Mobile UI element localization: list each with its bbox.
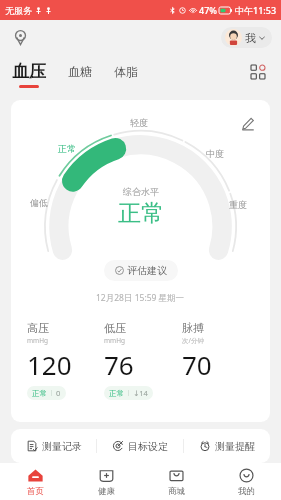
button[interactable]: Edit <box>236 112 258 134</box>
staticText: 健康 <box>98 486 115 497</box>
staticText: 120 <box>27 347 72 382</box>
staticText: 测量提醒 <box>215 440 255 453</box>
staticText: 正常 <box>32 389 47 398</box>
staticText: 评估建议 <box>127 264 167 277</box>
staticText: 测量记录 <box>42 440 82 453</box>
button[interactable]: 血糖 <box>68 64 92 85</box>
button[interactable]: Location <box>9 26 31 48</box>
staticText: 目标设定 <box>128 440 168 453</box>
button[interactable]: 血压 <box>12 61 46 88</box>
staticText: 12月28日 15:59 星期一 <box>96 292 185 304</box>
staticText: 正常 <box>58 143 76 154</box>
staticText: 正常 <box>118 199 164 228</box>
staticText: 低压 <box>104 321 126 335</box>
button[interactable]: 测量提醒 <box>184 429 270 463</box>
staticText: 轻度 <box>130 117 148 128</box>
button[interactable]: 商城 <box>141 463 211 500</box>
staticText: 中度 <box>206 148 224 159</box>
staticText: mmHg <box>104 336 125 345</box>
button[interactable]: 我 <box>221 27 272 48</box>
staticText: 高压 <box>27 321 49 335</box>
button[interactable]: 评估建议 <box>104 260 178 281</box>
staticText: 47% <box>199 4 217 16</box>
staticText: 中午11:53 <box>235 4 277 16</box>
staticText: 我 <box>245 31 256 45</box>
staticText: 重度 <box>229 199 247 210</box>
staticText: 商城 <box>168 486 185 497</box>
staticText: 我的 <box>238 486 255 497</box>
staticText: 次/分钟 <box>182 336 204 345</box>
staticText: 综合水平 <box>123 186 159 197</box>
button[interactable]: 首页 <box>0 463 71 500</box>
staticText: 血糖 <box>68 64 92 79</box>
staticText: 76 <box>104 347 134 382</box>
button[interactable]: 我的 <box>211 463 281 500</box>
staticText: mmHg <box>27 336 48 345</box>
staticText: 70 <box>182 347 212 382</box>
button[interactable]: 体脂 <box>114 64 138 85</box>
staticText: 首页 <box>27 486 44 497</box>
staticText: 偏低 <box>30 197 48 208</box>
button[interactable]: 测量记录 <box>11 429 96 463</box>
button[interactable]: More <box>247 61 269 83</box>
staticText: ↓14 <box>133 388 148 398</box>
button[interactable]: 目标设定 <box>97 429 183 463</box>
staticText: 脉搏 <box>182 321 204 335</box>
staticText: 体脂 <box>114 64 138 79</box>
staticText: 0 <box>56 388 61 398</box>
staticText: 血压 <box>12 61 46 82</box>
button[interactable]: 健康 <box>71 463 141 500</box>
staticText: 无服务 <box>5 5 32 16</box>
staticText: 正常 <box>109 389 124 398</box>
